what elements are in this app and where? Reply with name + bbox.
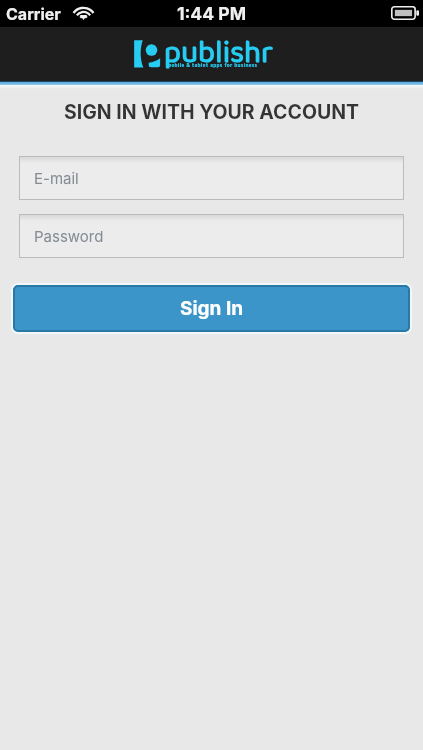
staticText: 1:44 PM [0, 3, 423, 24]
staticText: Password [34, 227, 104, 245]
staticText: Sign In [180, 297, 244, 320]
staticText: E-mail [34, 169, 79, 187]
staticText: SIGN IN WITH YOUR ACCOUNT [0, 100, 423, 124]
other: Battery [391, 6, 419, 20]
button[interactable]: Password [19, 214, 404, 258]
staticText: Carrier [6, 4, 61, 23]
staticText: publishr [164, 29, 273, 71]
other: Wi-Fi signal [73, 6, 94, 20]
staticText: mobile & tablet apps for business [167, 62, 258, 69]
button[interactable]: Sign In [13, 285, 410, 332]
button[interactable]: E-mail [19, 156, 404, 200]
